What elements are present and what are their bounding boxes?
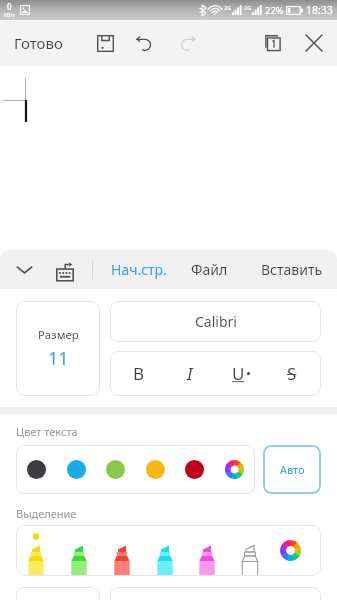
button[interactable]: Highlight colour — [152, 525, 178, 576]
staticText: Файл — [191, 260, 228, 279]
staticText: 2G — [244, 4, 252, 11]
staticText: Размер — [38, 327, 79, 343]
button[interactable]: Файл — [190, 251, 229, 288]
button[interactable]: Redo — [172, 27, 204, 59]
staticText: S — [287, 362, 297, 385]
staticText: U — [232, 362, 245, 385]
button[interactable]: Strikethrough — [270, 352, 314, 395]
button[interactable]: Alignment — [110, 587, 321, 600]
button[interactable]: Авто — [263, 445, 321, 494]
button[interactable]: Colour — [146, 460, 165, 479]
button[interactable]: Нач.стр. — [110, 251, 168, 288]
staticText: Нач.стр. — [111, 260, 167, 279]
staticText: Готово — [14, 33, 63, 53]
staticText: Цвет текста — [16, 424, 78, 439]
button[interactable]: Tabs — [256, 27, 288, 59]
button[interactable]: Save — [89, 27, 121, 59]
staticText: 11 — [48, 346, 69, 371]
button[interactable]: Keyboard — [48, 253, 81, 286]
button[interactable]: Collapse toolbar — [8, 253, 41, 286]
staticText: Calibri — [195, 312, 237, 331]
button[interactable]: Вставить — [260, 251, 324, 288]
button[interactable]: Интервал — [16, 587, 100, 600]
button[interactable]: Calibri — [110, 301, 321, 342]
staticText: KB/s — [4, 12, 15, 19]
staticText: Выделение — [16, 506, 77, 521]
button[interactable]: Close — [298, 27, 330, 59]
button[interactable]: Highlight colour — [194, 525, 220, 576]
button[interactable]: Colour — [67, 460, 86, 479]
button[interactable]: Готово — [0, 25, 67, 61]
staticText: Вставить — [261, 260, 323, 279]
button[interactable]: Bold — [117, 352, 161, 395]
button[interactable]: Colour — [27, 460, 46, 479]
button[interactable]: Highlight colour — [109, 525, 135, 576]
staticText: Авто — [280, 462, 305, 477]
staticText: B — [133, 362, 145, 385]
button[interactable]: Highlight colour — [66, 525, 92, 576]
staticText: 0 — [7, 1, 12, 12]
button[interactable]: More colours — [225, 460, 244, 479]
button[interactable]: Colour — [185, 460, 204, 479]
button[interactable]: Colour — [106, 460, 125, 479]
staticText: 18:33 — [306, 3, 333, 17]
button[interactable]: Italic — [168, 352, 212, 395]
button[interactable]: More colours — [280, 540, 301, 561]
staticText: 2G — [224, 4, 232, 11]
button[interactable]: Undo — [127, 27, 159, 59]
button[interactable]: Underline — [219, 352, 263, 395]
staticText: I — [187, 362, 193, 385]
button[interactable]: Highlight colour — [23, 525, 49, 576]
staticText: 22% — [265, 4, 284, 17]
button[interactable]: Highlight colour — [237, 525, 263, 576]
